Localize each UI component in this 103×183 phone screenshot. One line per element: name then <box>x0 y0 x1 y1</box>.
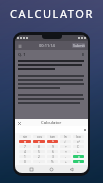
staticText: log <box>76 135 81 138</box>
staticText: × <box>65 150 67 153</box>
staticText: . <box>39 160 40 163</box>
staticText: % <box>51 160 54 163</box>
button[interactable]: 9 <box>47 145 58 148</box>
button[interactable]: + <box>60 160 71 163</box>
staticText: = <box>78 155 80 158</box>
staticText: sin <box>23 135 28 138</box>
button[interactable]: 8 <box>33 145 45 148</box>
staticText: 1 <box>24 155 26 158</box>
button[interactable]: Submit <box>72 43 85 48</box>
button[interactable]: Home <box>48 166 55 173</box>
button[interactable]: ÷ <box>60 145 71 148</box>
button[interactable]: - <box>60 155 71 158</box>
staticText: e <box>38 140 40 143</box>
button[interactable]: ^ <box>47 140 58 143</box>
button[interactable]: 3 <box>47 155 58 158</box>
button[interactable]: × <box>60 150 71 153</box>
button[interactable]: 2 <box>33 155 45 158</box>
staticText: ÷ <box>65 145 67 148</box>
button[interactable]: = <box>73 160 84 163</box>
staticText: CALCULATOR <box>10 6 94 21</box>
button[interactable]: Back <box>68 166 75 173</box>
button[interactable]: x² <box>73 140 84 143</box>
staticText: - <box>65 155 67 158</box>
button[interactable]: Recents <box>28 166 35 173</box>
staticText: ln <box>64 135 67 138</box>
button[interactable]: ← <box>73 150 84 153</box>
button[interactable]: sin <box>19 135 31 138</box>
staticText: 5 <box>38 150 40 153</box>
button[interactable]: Close <box>17 121 21 125</box>
button[interactable]: log <box>73 135 84 138</box>
staticText: 4 <box>24 150 26 153</box>
button[interactable]: cos <box>33 135 45 138</box>
staticText: Submit <box>73 43 85 48</box>
button[interactable]: 6 <box>47 150 58 153</box>
staticText: Calculator <box>41 120 62 126</box>
staticText: cos <box>37 135 42 138</box>
staticText: ← <box>77 150 80 153</box>
button[interactable]: Bookmark <box>82 53 85 56</box>
staticText: 9 <box>52 145 54 148</box>
staticText: ^ <box>52 140 54 143</box>
button[interactable]: 5 <box>33 150 45 153</box>
staticText: 6 <box>52 150 54 153</box>
staticText: C <box>77 145 80 148</box>
staticText: + <box>65 160 67 163</box>
staticText: Q. 1 <box>18 52 26 57</box>
staticText: 3 <box>52 155 54 158</box>
button[interactable]: % <box>47 160 58 163</box>
button[interactable]: 1 <box>19 155 31 158</box>
button[interactable]: π <box>19 140 31 143</box>
button[interactable]: tan <box>47 135 58 138</box>
staticText: 2 <box>38 155 40 158</box>
button[interactable]: 0 <box>19 160 31 163</box>
button[interactable]: = <box>73 155 84 158</box>
staticText: 8 <box>38 145 40 148</box>
staticText: π <box>24 140 27 143</box>
staticText: x² <box>77 140 80 143</box>
button[interactable]: Menu <box>18 44 22 48</box>
staticText: tan <box>50 135 55 138</box>
staticText: 7 <box>24 145 26 148</box>
button[interactable]: ln <box>60 135 71 138</box>
button[interactable]: 7 <box>19 145 31 148</box>
button[interactable]: 4 <box>19 150 31 153</box>
staticText: 00:11:14 <box>39 43 55 48</box>
staticText: √ <box>64 140 67 143</box>
staticText: = <box>78 160 80 163</box>
button[interactable]: √ <box>60 140 71 143</box>
button[interactable]: e <box>33 140 45 143</box>
button[interactable]: C <box>73 145 84 148</box>
